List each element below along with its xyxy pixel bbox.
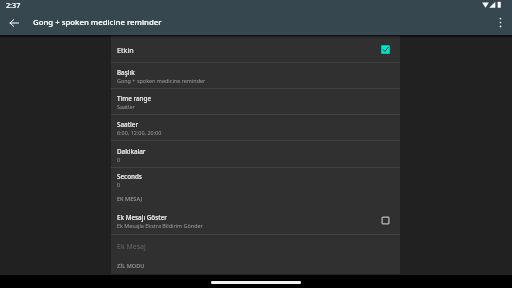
staticText: Gong + spoken medicine reminder xyxy=(33,17,162,28)
staticText: Başlık xyxy=(117,68,135,77)
button[interactable]: Seconds xyxy=(111,168,400,191)
button[interactable]: Time range xyxy=(111,89,400,114)
staticText: ZİL MODU xyxy=(117,262,145,270)
staticText: Saatler xyxy=(117,103,135,110)
staticText: 0 xyxy=(117,156,121,163)
staticText: 2:37 xyxy=(6,0,21,10)
staticText: 0 xyxy=(117,181,121,188)
button[interactable]: Başlık xyxy=(111,63,400,88)
button[interactable]: Dakikalar xyxy=(111,141,400,167)
staticText: EK MESAJ xyxy=(117,195,142,203)
staticText: Ek Mesaj xyxy=(117,242,146,252)
staticText: Gong + spoken medicine reminder xyxy=(117,77,206,84)
button[interactable]: Ek Mesaj xyxy=(111,235,400,258)
staticText: Saatler xyxy=(117,120,139,129)
staticText: 6:00, 12:00, 20:00 xyxy=(117,129,162,136)
staticText: Dakikalar xyxy=(117,147,146,156)
staticText: Ek Mesajı Göster xyxy=(117,213,167,222)
staticText: Time range xyxy=(117,94,152,103)
staticText: Ek Mesajla Ekstra Bildirim Gönder xyxy=(117,222,203,229)
button[interactable]: Ek Mesajı Göster xyxy=(111,207,400,234)
button[interactable]: More options xyxy=(488,13,512,35)
staticText: Seconds xyxy=(117,172,142,181)
button[interactable]: Etkin xyxy=(111,35,400,62)
staticText: Etkin xyxy=(117,45,134,55)
button[interactable]: Navigate up xyxy=(0,13,28,35)
button[interactable]: Saatler xyxy=(111,115,400,140)
